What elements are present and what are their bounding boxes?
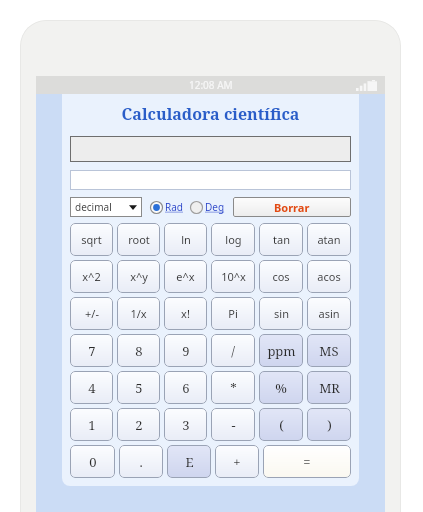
staticText: % [275,379,287,397]
button[interactable]: E [167,445,211,478]
staticText: 6 [182,379,190,397]
staticText: 7 [88,342,96,360]
button[interactable]: x^y [117,260,160,293]
staticText: . [139,453,143,471]
button[interactable]: 5 [117,371,160,404]
staticText: - [231,416,236,434]
button[interactable] [70,170,351,190]
staticText: log [225,232,242,247]
button[interactable]: tan [259,223,303,256]
staticText: 2 [135,416,143,434]
staticText: x^y [130,269,148,284]
button[interactable]: ) [307,408,351,441]
button[interactable]: acos [307,260,351,293]
button[interactable]: = [263,445,351,478]
staticText: ) [327,416,332,434]
staticText: E [185,453,194,471]
staticText: * [230,379,237,397]
button[interactable]: % [259,371,303,404]
staticText: / [231,342,235,360]
staticText: Pi [228,306,238,321]
staticText: 8 [135,342,143,360]
button[interactable]: decimal [70,197,142,217]
button[interactable]: 4 [70,371,113,404]
staticText: ln [181,232,191,247]
staticText: sin [274,306,289,321]
button[interactable]: Rad [150,200,183,214]
button[interactable]: +/- [70,297,113,330]
button[interactable]: / [211,334,255,367]
button[interactable]: Pi [211,297,255,330]
staticText: cos [272,269,290,284]
button[interactable]: asin [307,297,351,330]
button[interactable]: sqrt [70,223,113,256]
staticText: 12:08 AM [189,78,233,92]
button[interactable]: sin [259,297,303,330]
staticText: atan [317,232,341,247]
button[interactable]: 1/x [117,297,160,330]
staticText: + [233,453,241,471]
button[interactable]: * [211,371,255,404]
button[interactable]: 9 [164,334,207,367]
button[interactable]: 8 [117,334,160,367]
staticText: asin [318,306,340,321]
button[interactable]: e^x [164,260,207,293]
staticText: = [303,453,311,471]
staticText: Borrar [274,200,310,215]
staticText: decimal [75,200,112,214]
button[interactable]: log [211,223,255,256]
staticText: root [128,232,150,247]
button[interactable]: 2 [117,408,160,441]
staticText: sqrt [81,232,102,247]
staticText: Rad [165,200,183,214]
button[interactable]: ( [259,408,303,441]
staticText: 0 [89,453,97,471]
button[interactable]: x! [164,297,207,330]
button[interactable]: atan [307,223,351,256]
staticText: 10^x [221,269,246,284]
staticText: MR [319,379,340,397]
button[interactable]: cos [259,260,303,293]
button[interactable]: 1 [70,408,113,441]
staticText: 9 [182,342,190,360]
button[interactable]: 0 [70,445,115,478]
staticText: x! [181,306,190,321]
staticText: ppm [267,342,296,360]
staticText: ( [279,416,284,434]
staticText: Calculadora científica [70,103,351,125]
staticText: tan [273,232,290,247]
button[interactable]: x^2 [70,260,113,293]
button[interactable]: 10^x [211,260,255,293]
button[interactable]: - [211,408,255,441]
button[interactable]: Borrar [233,197,351,217]
button[interactable]: . [119,445,163,478]
staticText: 1/x [130,306,147,321]
staticText: MS [319,342,339,360]
button[interactable]: MS [307,334,351,367]
staticText: 4 [88,379,96,397]
staticText: acos [317,269,341,284]
staticText: x^2 [82,269,101,284]
button[interactable]: 7 [70,334,113,367]
button[interactable]: root [117,223,160,256]
button[interactable]: + [215,445,259,478]
button[interactable]: Deg [190,200,225,214]
staticText: Deg [205,200,225,214]
button[interactable]: 3 [164,408,207,441]
staticText: 5 [135,379,143,397]
button[interactable]: 6 [164,371,207,404]
staticText: 1 [88,416,96,434]
button[interactable] [70,136,351,162]
button[interactable]: ln [164,223,207,256]
button[interactable]: ppm [259,334,303,367]
staticText: +/- [85,306,99,321]
staticText: e^x [176,269,195,284]
button[interactable]: MR [307,371,351,404]
staticText: 3 [182,416,190,434]
